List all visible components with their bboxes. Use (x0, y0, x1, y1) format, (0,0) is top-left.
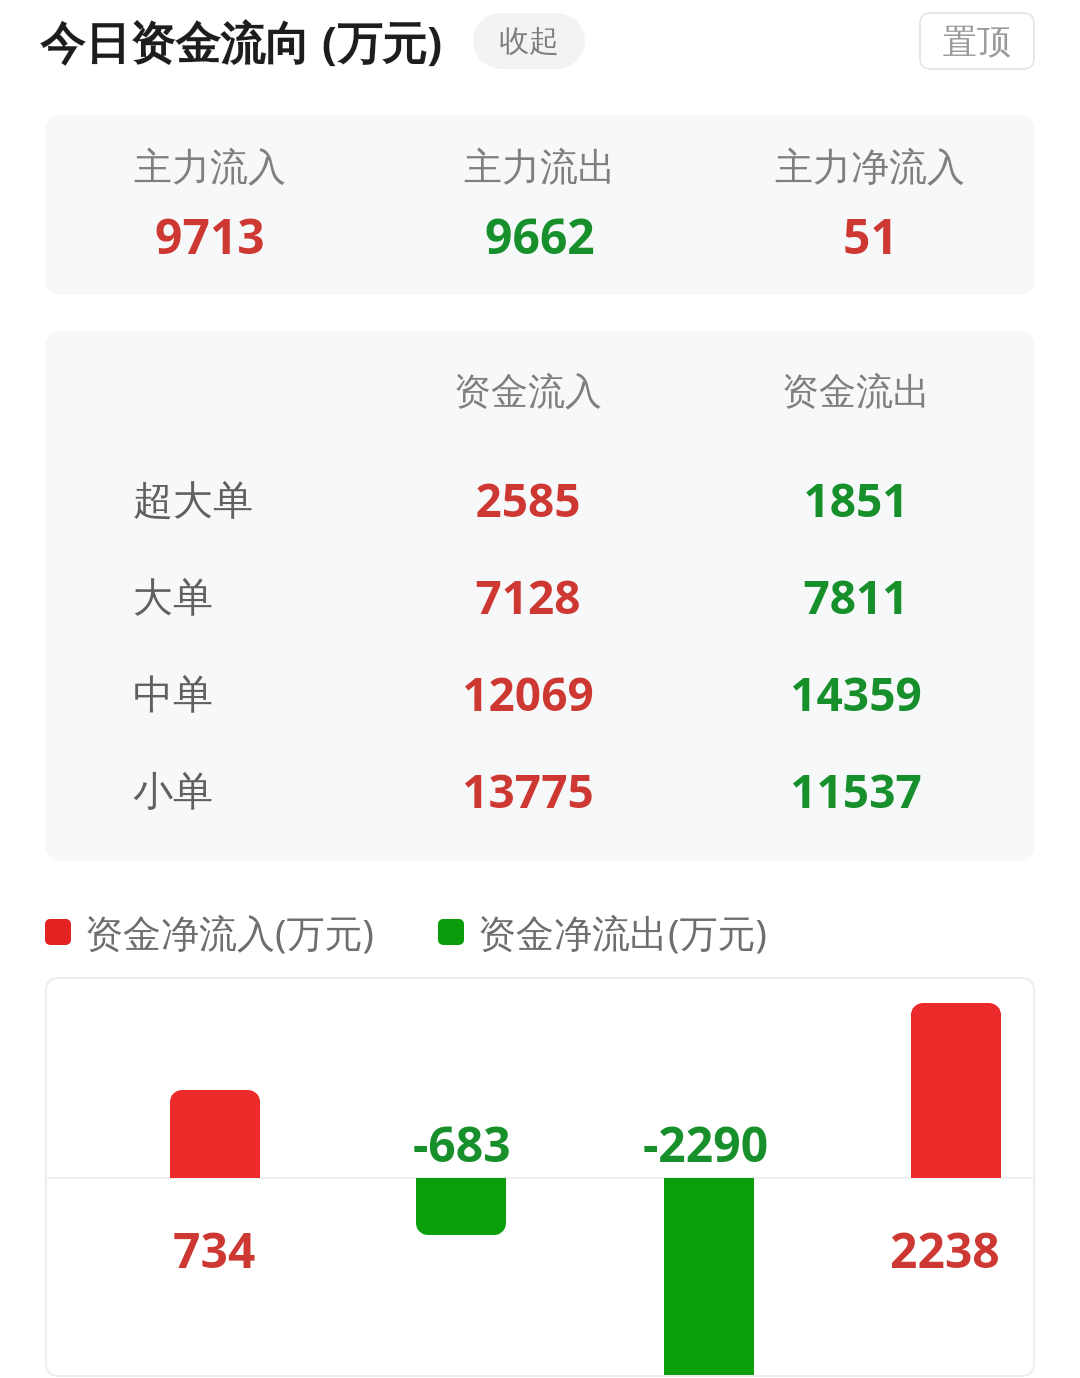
staticText: 今日资金流向 (万元) (40, 11, 443, 72)
staticText: 9713 (155, 203, 265, 268)
staticText: 2585 (475, 468, 581, 531)
button[interactable]: 主力流入 (45, 115, 1035, 295)
button[interactable]: 超大单 (45, 451, 1035, 548)
button[interactable]: 大单 (45, 548, 1035, 645)
staticText: -683 (413, 1111, 511, 1176)
staticText: 主力流入 (134, 143, 286, 191)
staticText: 资金流出 (782, 368, 930, 415)
staticText: 13775 (462, 759, 594, 822)
staticText: 主力流出 (464, 143, 616, 191)
staticText: 12069 (462, 662, 594, 725)
staticText: 9662 (485, 203, 595, 268)
staticText: 1851 (803, 468, 909, 531)
staticText: 超大单 (133, 475, 253, 525)
button[interactable]: 收起 (473, 13, 585, 69)
staticText: 小单 (133, 766, 213, 816)
staticText: 中单 (133, 669, 213, 719)
button[interactable]: 小单 (45, 742, 1035, 839)
staticText: 7811 (803, 565, 909, 628)
staticText: 资金净流出(万元) (478, 906, 767, 958)
staticText: 置顶 (943, 20, 1011, 63)
staticText: 2238 (890, 1217, 1000, 1282)
staticText: -2290 (643, 1111, 769, 1176)
staticText: 51 (843, 203, 898, 268)
staticText: 734 (173, 1217, 256, 1282)
staticText: 资金流入 (454, 368, 602, 415)
staticText: 主力净流入 (775, 143, 965, 191)
staticText: 14359 (790, 662, 922, 725)
staticText: 收起 (499, 22, 559, 60)
staticText: 资金净流入(万元) (85, 906, 374, 958)
staticText: 大单 (133, 572, 213, 622)
button[interactable]: 置顶 (919, 12, 1035, 70)
staticText: 7128 (475, 565, 581, 628)
button[interactable]: 中单 (45, 645, 1035, 742)
staticText: 11537 (790, 759, 922, 822)
